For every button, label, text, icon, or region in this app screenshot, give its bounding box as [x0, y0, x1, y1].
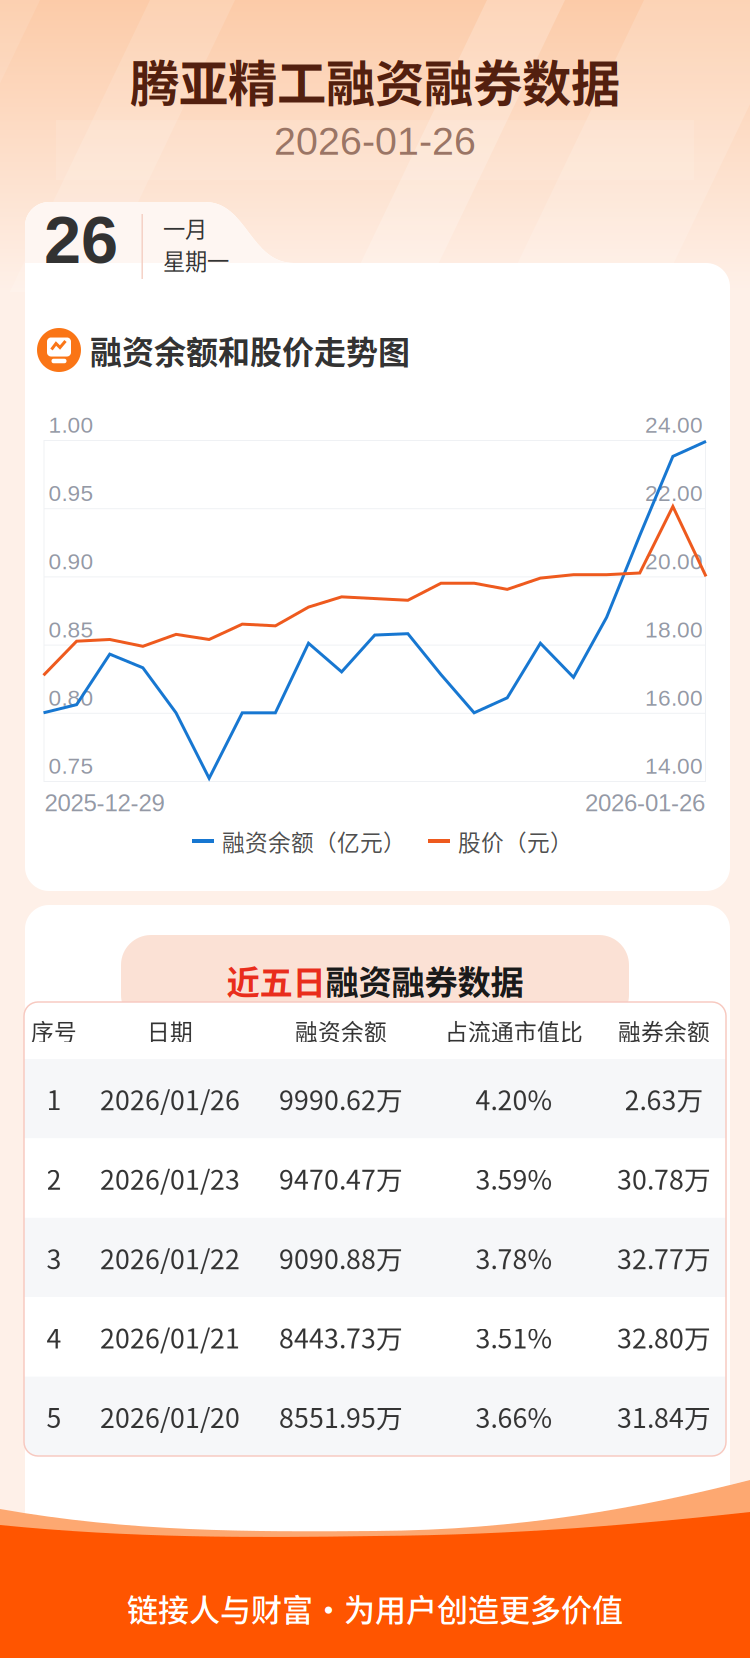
- staticText: 2026/01/23: [100, 1159, 240, 1197]
- staticText: 股价（元）: [458, 825, 573, 857]
- staticText: 融资余额和股价走势图: [90, 327, 410, 373]
- staticText: 14.00: [645, 753, 703, 779]
- staticText: 腾亚精工融资融券数据: [130, 44, 620, 116]
- staticText: 3.59%: [475, 1159, 552, 1197]
- staticText: 融券余额: [618, 1014, 710, 1047]
- staticText: 26: [44, 203, 118, 277]
- staticText: 3.51%: [475, 1318, 552, 1356]
- staticText: 融资融券数据: [325, 956, 523, 1004]
- staticText: 近五日: [226, 956, 325, 1004]
- staticText: 9470.47万: [279, 1159, 403, 1197]
- staticText: 18.00: [645, 617, 703, 642]
- staticText: 2026-01-26: [274, 119, 476, 163]
- staticText: 2026/01/20: [100, 1397, 240, 1436]
- staticText: 0.90: [48, 549, 93, 574]
- staticText: 31.84万: [617, 1397, 711, 1436]
- staticText: 3.78%: [475, 1238, 552, 1277]
- staticText: 2026/01/22: [100, 1238, 240, 1277]
- staticText: 2026/01/26: [100, 1079, 240, 1118]
- staticText: 16.00: [645, 685, 703, 710]
- staticText: 24.00: [645, 412, 703, 438]
- staticText: 0.85: [48, 617, 93, 642]
- staticText: 0.95: [48, 480, 93, 506]
- staticText: 32.80万: [617, 1318, 711, 1356]
- staticText: 9090.88万: [279, 1238, 403, 1277]
- staticText: 3.66%: [475, 1397, 552, 1436]
- staticText: 星期一: [163, 244, 229, 276]
- staticText: 2026/01/21: [100, 1318, 240, 1356]
- staticText: 融资余额（亿元）: [222, 825, 406, 857]
- staticText: 20.00: [645, 549, 703, 574]
- staticText: 0.75: [48, 753, 93, 779]
- staticText: 8551.95万: [279, 1397, 403, 1436]
- staticText: 0.80: [48, 685, 93, 710]
- staticText: 2026-01-26: [585, 790, 705, 816]
- staticText: 30.78万: [617, 1159, 711, 1197]
- staticText: 序号: [31, 1014, 77, 1047]
- staticText: 日期: [147, 1014, 193, 1047]
- staticText: 占流通市值比: [445, 1014, 583, 1047]
- staticText: 3: [46, 1238, 61, 1277]
- staticText: 9990.62万: [279, 1079, 403, 1118]
- staticText: 链接人与财富·为用户创造更多价值: [127, 1585, 623, 1630]
- staticText: 1: [46, 1079, 61, 1118]
- staticText: 融资余额: [295, 1014, 387, 1047]
- staticText: 22.00: [645, 480, 703, 506]
- staticText: 8443.73万: [279, 1318, 403, 1356]
- staticText: 2.63万: [624, 1079, 703, 1118]
- staticText: 32.77万: [617, 1238, 711, 1277]
- staticText: 2025-12-29: [44, 790, 164, 816]
- staticText: 4.20%: [475, 1079, 552, 1118]
- staticText: 一月: [163, 212, 207, 244]
- staticText: 1.00: [48, 412, 93, 438]
- staticText: 5: [46, 1397, 61, 1436]
- staticText: 4: [46, 1318, 61, 1356]
- staticText: 2: [46, 1159, 61, 1197]
